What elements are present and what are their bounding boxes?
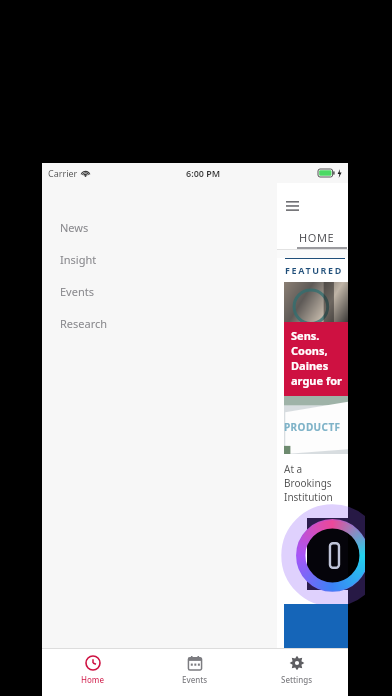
staticText: Research <box>60 316 108 331</box>
button[interactable]: Settings <box>246 649 348 696</box>
staticText: Insight <box>60 252 97 267</box>
button[interactable]: Sens. Coons, Daines argue for a federal … <box>284 322 348 396</box>
staticText: Carrier <box>48 167 78 179</box>
staticText: PRODUCTFORUM <box>284 420 348 434</box>
button[interactable]: Events <box>42 275 277 307</box>
staticText: Sens. Coons, Daines argue for a federal … <box>291 328 346 388</box>
staticText: Events <box>60 284 94 299</box>
staticText: 6:00 PM <box>186 167 221 179</box>
button[interactable]: News <box>42 211 277 243</box>
staticText: FEATURED <box>285 264 343 276</box>
button[interactable]: Insight <box>42 243 277 275</box>
staticText: At a Brookings Institution event, Sens. … <box>284 462 346 504</box>
staticText: Settings <box>281 674 313 685</box>
button[interactable]: HOME <box>295 226 339 249</box>
staticText: Events <box>182 674 208 685</box>
button[interactable]: Home <box>42 649 144 696</box>
button[interactable]: Events <box>144 649 246 696</box>
button[interactable]: Research <box>42 307 277 339</box>
staticText: HOME <box>299 230 335 245</box>
staticText: Home <box>81 674 105 685</box>
button[interactable]: Menu <box>279 193 305 219</box>
staticText: News <box>60 220 89 235</box>
